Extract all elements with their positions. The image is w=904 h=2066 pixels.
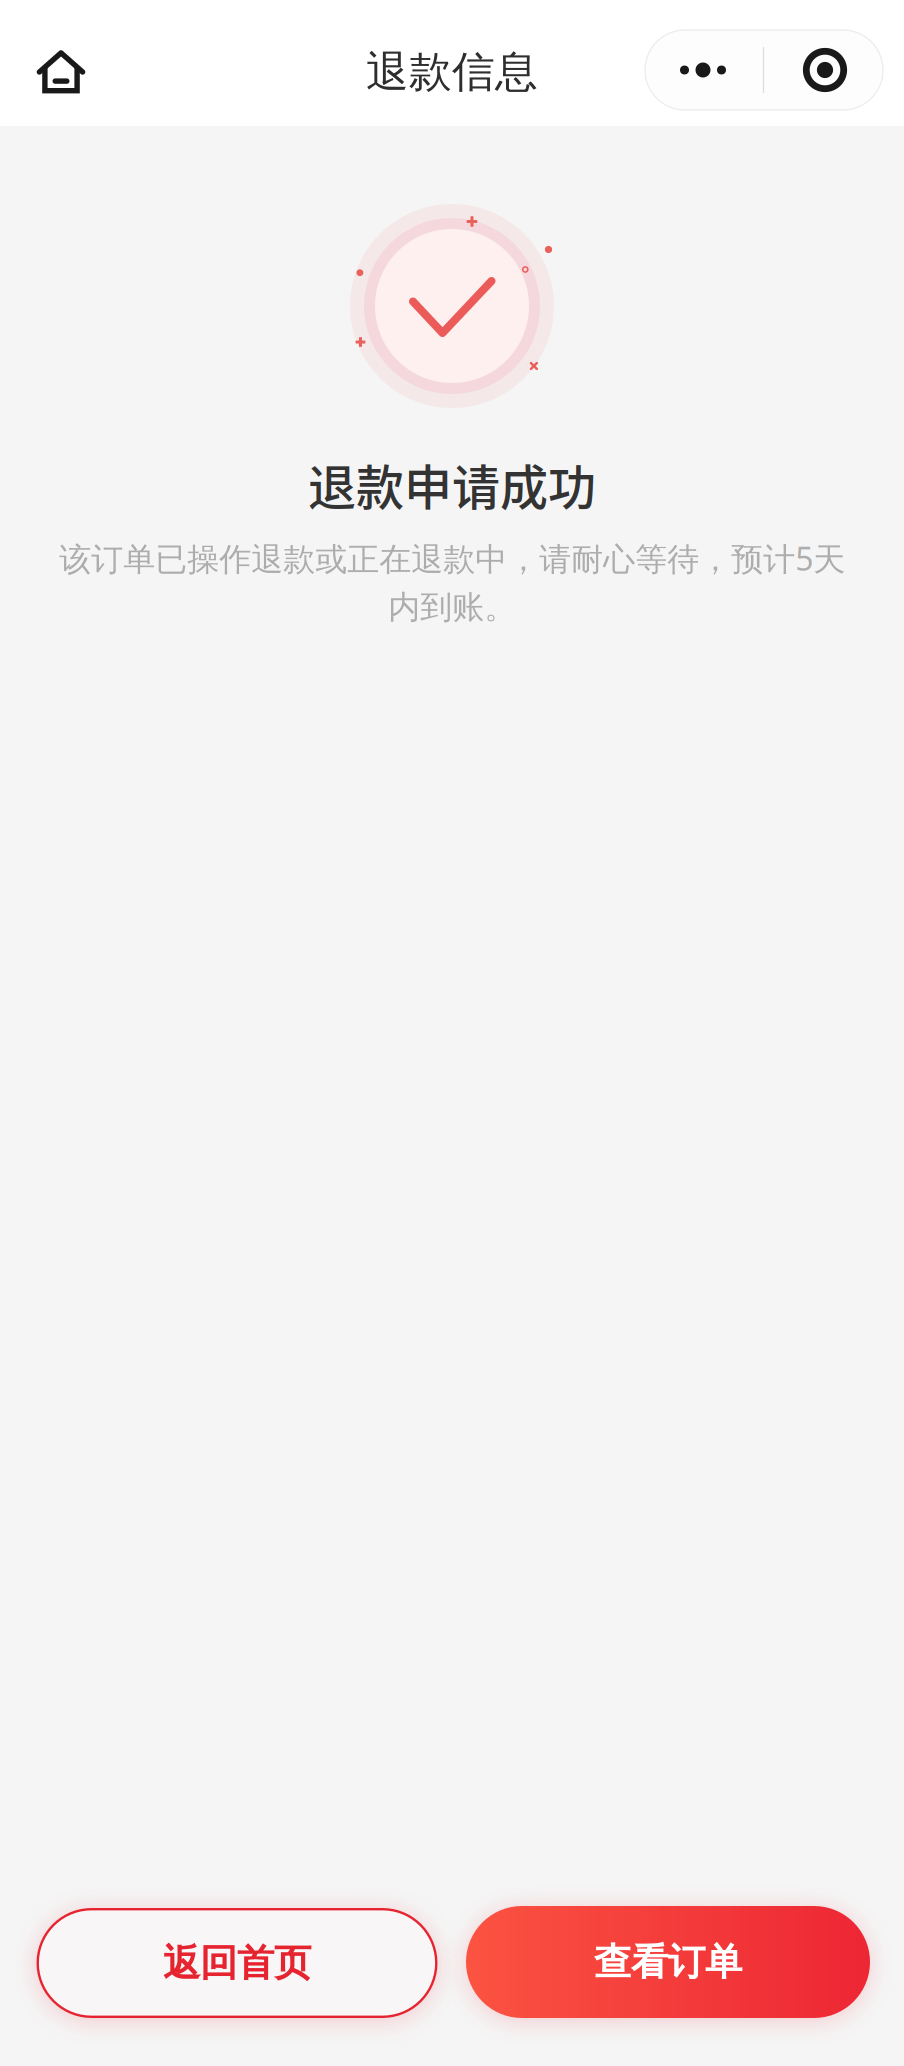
staticText: 退款申请成功 bbox=[308, 449, 596, 519]
button[interactable]: 查看订单 bbox=[466, 1906, 870, 2018]
staticText: 查看订单 bbox=[594, 1939, 742, 1985]
staticText: 退款信息 bbox=[366, 46, 538, 98]
button[interactable]: More options bbox=[645, 30, 883, 110]
staticText: 该订单已操作退款或正在退款中，请耐心等待，预计5天内到账。 bbox=[59, 537, 845, 627]
button[interactable]: 返回首页 bbox=[36, 1908, 437, 2018]
button[interactable]: Home bbox=[13, 24, 109, 120]
staticText: 返回首页 bbox=[163, 1940, 311, 1986]
